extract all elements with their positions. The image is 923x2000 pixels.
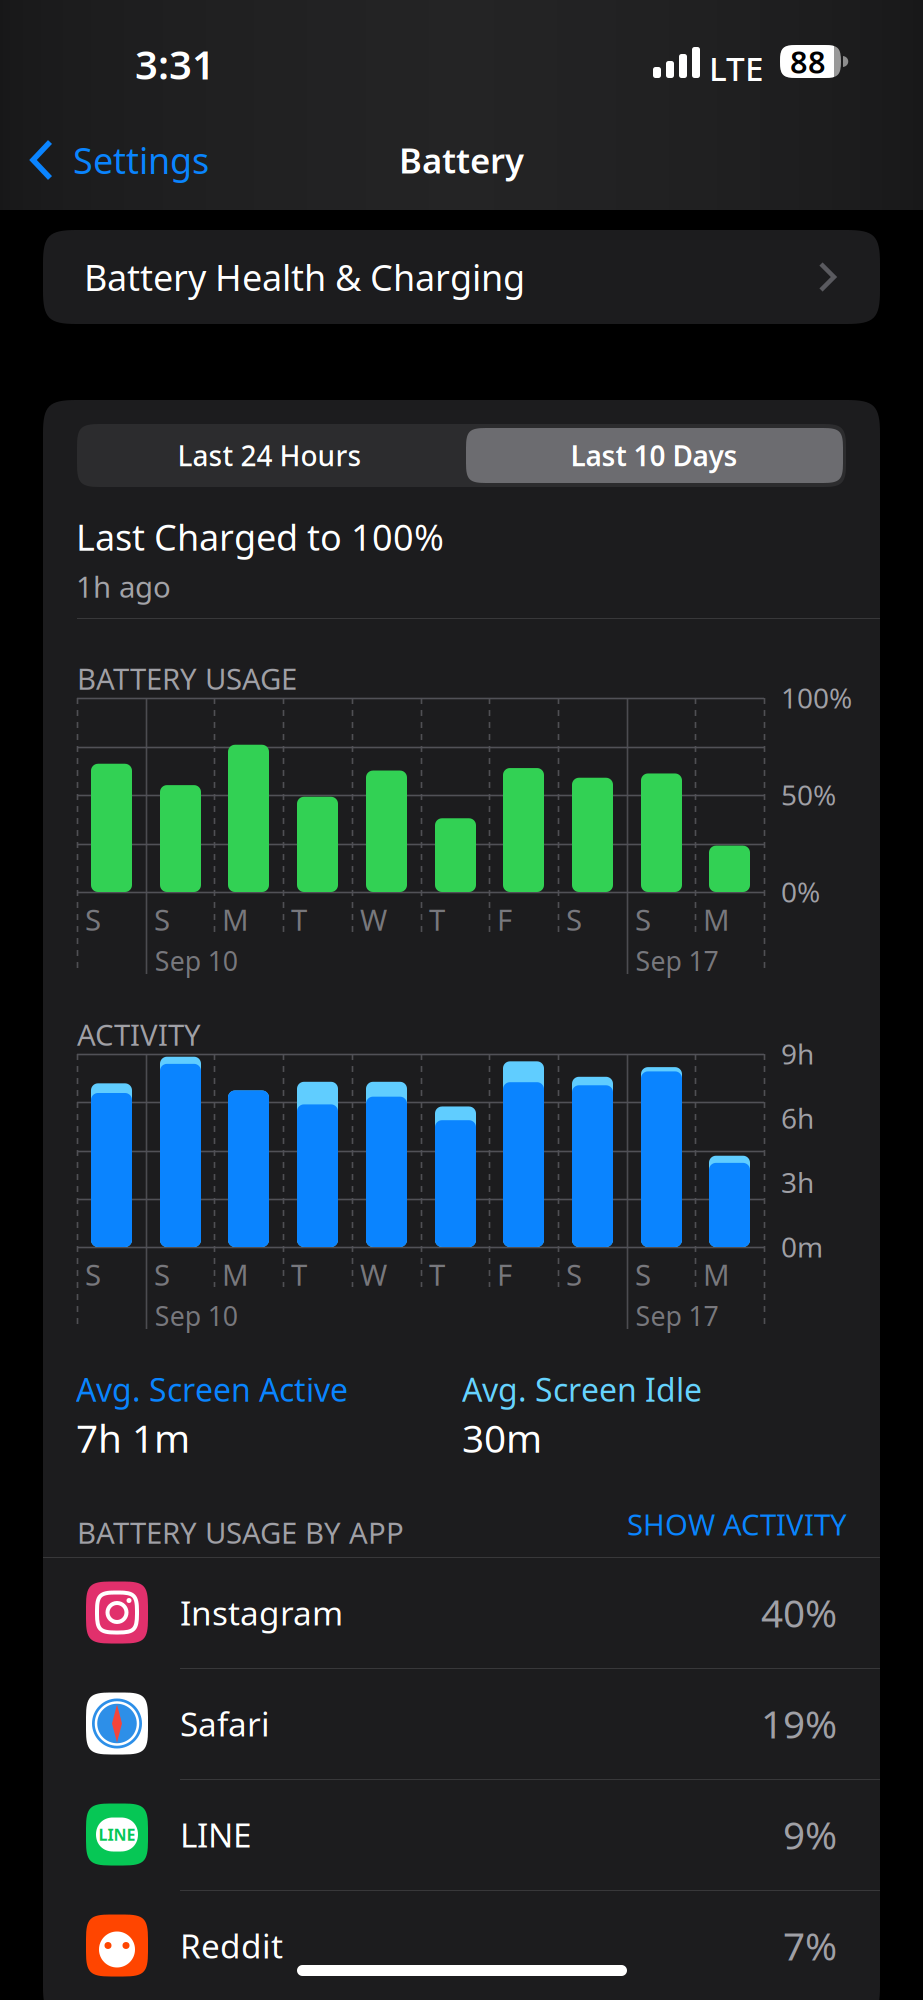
button[interactable]: Settings bbox=[0, 110, 225, 210]
button[interactable]: Battery Health & Charging bbox=[43, 230, 880, 324]
staticText: LTE bbox=[709, 46, 764, 90]
staticText: SHOW ACTIVITY bbox=[627, 1504, 847, 1543]
staticText: Safari bbox=[180, 1701, 270, 1746]
staticText: Reddit bbox=[180, 1923, 283, 1968]
staticText: M bbox=[703, 900, 730, 939]
staticText: W bbox=[360, 1255, 387, 1294]
button[interactable]: Safari bbox=[43, 1668, 880, 1779]
staticText: T bbox=[291, 900, 307, 939]
staticText: LINE bbox=[180, 1812, 252, 1857]
staticText: F bbox=[497, 1255, 512, 1294]
button[interactable]: Last 24 Hours bbox=[77, 424, 462, 487]
staticText: Sep 10 bbox=[155, 1298, 238, 1333]
staticText: S bbox=[85, 900, 101, 939]
staticText: T bbox=[291, 1255, 307, 1294]
staticText: S bbox=[154, 1255, 170, 1294]
staticText: T bbox=[429, 1255, 445, 1294]
staticText: W bbox=[360, 900, 387, 939]
staticText: S bbox=[635, 1255, 651, 1294]
staticText: 19% bbox=[761, 1698, 837, 1749]
staticText: 7h 1m bbox=[76, 1412, 190, 1463]
staticText: Avg. Screen Idle bbox=[462, 1368, 702, 1410]
staticText: 3h bbox=[781, 1164, 814, 1201]
button[interactable]: Last 10 Days bbox=[462, 424, 846, 487]
staticText: S bbox=[85, 1255, 101, 1294]
staticText: M bbox=[222, 900, 249, 939]
staticText: Last 10 Days bbox=[570, 437, 737, 474]
staticText: Sep 17 bbox=[636, 1298, 719, 1333]
staticText: Battery bbox=[399, 137, 524, 183]
staticText: 6h bbox=[781, 1099, 814, 1136]
button[interactable]: Instagram bbox=[43, 1557, 880, 1668]
staticText: S bbox=[154, 900, 170, 939]
staticText: Sep 17 bbox=[636, 943, 719, 978]
staticText: S bbox=[566, 900, 582, 939]
staticText: M bbox=[222, 1255, 249, 1294]
staticText: Last Charged to 100% bbox=[76, 513, 444, 561]
staticText: 3:31 bbox=[135, 37, 215, 90]
staticText: 9% bbox=[783, 1809, 837, 1860]
staticText: 9h bbox=[781, 1035, 814, 1072]
staticText: Settings bbox=[73, 136, 209, 184]
staticText: Instagram bbox=[180, 1590, 343, 1635]
staticText: Last 24 Hours bbox=[177, 437, 361, 474]
staticText: S bbox=[566, 1255, 582, 1294]
staticText: 50% bbox=[781, 776, 836, 813]
staticText: 88 bbox=[790, 41, 826, 82]
staticText: Sep 10 bbox=[155, 943, 238, 978]
staticText: 40% bbox=[761, 1587, 837, 1638]
staticText: LINE bbox=[98, 1824, 135, 1845]
staticText: 1h ago bbox=[76, 567, 171, 606]
staticText: Avg. Screen Active bbox=[76, 1368, 348, 1410]
button[interactable]: LINE bbox=[43, 1779, 880, 1890]
staticText: F bbox=[497, 900, 512, 939]
staticText: M bbox=[703, 1255, 730, 1294]
staticText: 7% bbox=[783, 1920, 837, 1971]
staticText: 100% bbox=[781, 679, 852, 716]
staticText: 0m bbox=[781, 1228, 823, 1265]
staticText: BATTERY USAGE bbox=[77, 659, 297, 698]
staticText: 0% bbox=[781, 873, 820, 910]
staticText: ACTIVITY bbox=[77, 1015, 201, 1054]
staticText: S bbox=[635, 900, 651, 939]
staticText: BATTERY USAGE BY APP bbox=[77, 1513, 404, 1552]
staticText: 30m bbox=[462, 1412, 542, 1463]
button[interactable]: SHOW ACTIVITY bbox=[487, 1502, 847, 1546]
button[interactable]: Reddit bbox=[43, 1890, 880, 2000]
staticText: Battery Health & Charging bbox=[84, 253, 525, 301]
staticText: T bbox=[429, 900, 445, 939]
